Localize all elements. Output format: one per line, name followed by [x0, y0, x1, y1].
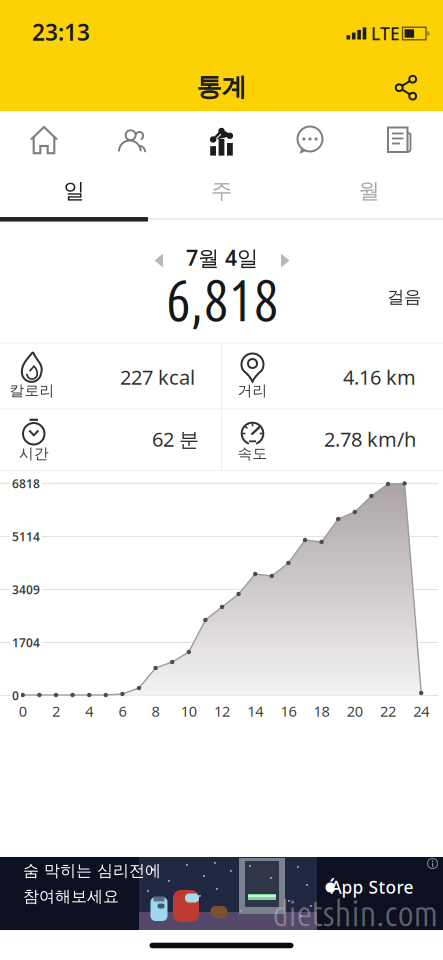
- staticText: 속도: [237, 444, 267, 462]
- staticText: 통계: [196, 71, 246, 102]
- staticText: 시간: [19, 444, 49, 462]
- button[interactable]: Community: [102, 115, 164, 165]
- staticText: 6,818: [165, 265, 278, 333]
- button[interactable]: Ad: [0, 857, 443, 930]
- staticText: 8: [152, 701, 160, 721]
- staticText: 6: [118, 701, 126, 721]
- staticText: 월: [358, 178, 379, 204]
- button[interactable]: Chat: [279, 115, 341, 165]
- button[interactable]: Statistics: [190, 115, 252, 165]
- staticText: 14: [247, 701, 263, 721]
- staticText: 20: [347, 701, 363, 721]
- staticText: 22: [380, 701, 396, 721]
- staticText: 2.78 km/h: [324, 426, 416, 452]
- staticText: 7월 4일: [186, 243, 258, 272]
- button[interactable]: Next day: [265, 240, 305, 280]
- button[interactable]: Home: [13, 115, 75, 165]
- staticText: 18: [314, 701, 330, 721]
- button[interactable]: 주: [148, 169, 295, 213]
- staticText: 6818: [12, 475, 40, 491]
- staticText: 걸음: [387, 286, 421, 308]
- staticText: 일: [63, 178, 84, 204]
- staticText: 숨 막히는 심리전에: [23, 861, 161, 880]
- button[interactable]: 월: [295, 169, 442, 213]
- button[interactable]: News: [368, 115, 430, 165]
- staticText: 참여해보세요: [23, 886, 119, 906]
- staticText: 23:13: [32, 17, 90, 47]
- staticText: dietshin.com: [272, 893, 437, 933]
- staticText: 5114: [12, 528, 40, 544]
- staticText: 1704: [12, 634, 40, 650]
- staticText: 거리: [237, 381, 267, 399]
- staticText: 12: [214, 701, 230, 721]
- staticText: App Store: [330, 875, 413, 898]
- staticText: 16: [280, 701, 296, 721]
- button[interactable]: Previous day: [139, 240, 179, 280]
- staticText: 4.16 km: [343, 364, 416, 390]
- staticText: 0: [12, 687, 19, 703]
- button[interactable]: Share: [384, 65, 428, 109]
- staticText: 4: [85, 701, 93, 721]
- staticText: LTE: [371, 22, 400, 45]
- staticText: 10: [181, 701, 197, 721]
- staticText: 3409: [12, 581, 40, 597]
- staticText: 2: [52, 701, 60, 721]
- staticText: 62 분: [152, 426, 199, 452]
- staticText: 칼로리: [9, 381, 54, 399]
- staticText: 24: [413, 701, 429, 721]
- staticText: 0: [19, 701, 27, 721]
- staticText: 227 kcal: [120, 364, 195, 390]
- button[interactable]: 일: [0, 169, 147, 213]
- staticText: 주: [211, 178, 232, 204]
